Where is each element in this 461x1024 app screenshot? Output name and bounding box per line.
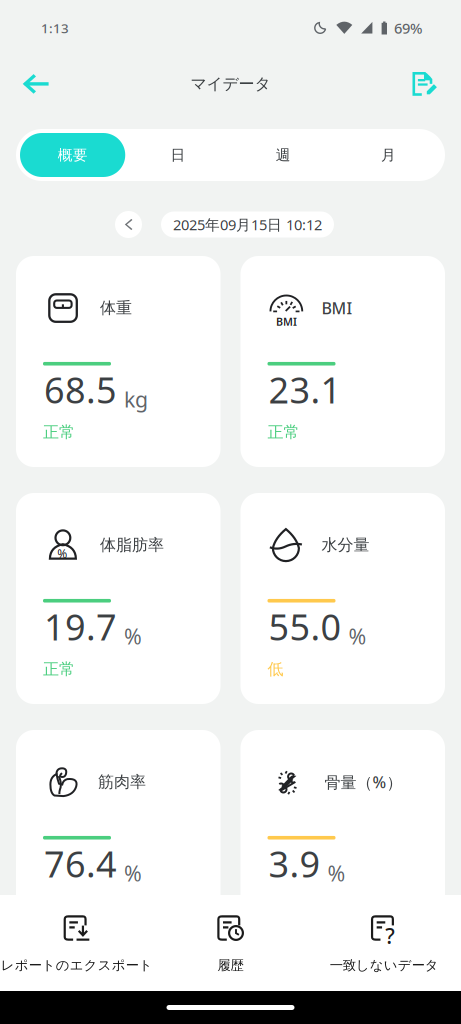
staticText: BMI bbox=[321, 297, 352, 319]
staticText: 3.9 bbox=[268, 839, 320, 887]
staticText: 19.7 bbox=[44, 602, 117, 650]
staticText: マイデータ bbox=[190, 74, 270, 94]
staticText: 1:13 bbox=[41, 19, 69, 37]
staticText: % bbox=[124, 622, 142, 650]
staticText: 骨量（%） bbox=[324, 771, 402, 793]
button[interactable]: BMI bbox=[240, 256, 445, 467]
staticText: 筋肉率 bbox=[98, 772, 146, 792]
button[interactable]: 水分量 bbox=[240, 493, 445, 704]
button[interactable]: 週 bbox=[230, 133, 336, 177]
staticText: 低 bbox=[267, 659, 283, 679]
button[interactable]: 体重 bbox=[16, 256, 220, 467]
staticText: % bbox=[57, 546, 67, 561]
button[interactable]: 骨量（%） bbox=[240, 730, 445, 941]
staticText: % bbox=[327, 859, 345, 887]
button[interactable]: 筋肉率 bbox=[16, 730, 220, 941]
staticText: 概要 bbox=[58, 146, 88, 164]
staticText: 2025年09月15日 10:12 bbox=[173, 215, 322, 234]
button[interactable]: 編集 bbox=[403, 62, 447, 106]
staticText: 69% bbox=[394, 18, 422, 38]
staticText: 正常 bbox=[43, 659, 75, 679]
staticText: 正常 bbox=[43, 896, 75, 916]
staticText: 55.0 bbox=[268, 602, 341, 650]
button[interactable]: % bbox=[16, 493, 220, 704]
staticText: 68.5 bbox=[44, 365, 117, 413]
staticText: 体脂肪率 bbox=[100, 535, 164, 555]
button[interactable]: 日 bbox=[125, 133, 230, 177]
staticText: BMI bbox=[276, 314, 297, 329]
button[interactable]: 戻る bbox=[14, 62, 58, 106]
button[interactable]: 概要 bbox=[20, 133, 125, 177]
staticText: 体重 bbox=[100, 298, 132, 318]
staticText: 履歴 bbox=[217, 957, 243, 973]
button[interactable]: レポートのエクスポート bbox=[0, 895, 154, 991]
staticText: % bbox=[124, 859, 142, 887]
button[interactable]: 履歴 bbox=[154, 895, 307, 991]
staticText: 正常 bbox=[267, 422, 299, 442]
button[interactable]: ? bbox=[307, 895, 461, 991]
staticText: 週 bbox=[276, 146, 291, 164]
staticText: 23.1 bbox=[268, 365, 341, 413]
staticText: 76.4 bbox=[44, 839, 117, 887]
staticText: 水分量 bbox=[321, 535, 369, 555]
staticText: 日 bbox=[170, 146, 185, 164]
staticText: 正常 bbox=[43, 422, 75, 442]
staticText: レポートのエクスポート bbox=[1, 957, 153, 973]
button[interactable]: 月 bbox=[336, 133, 441, 177]
staticText: 月 bbox=[381, 146, 396, 164]
staticText: 一致しないデータ bbox=[330, 957, 439, 973]
button[interactable]: 前の日 bbox=[115, 211, 142, 238]
staticText: % bbox=[348, 622, 366, 650]
staticText: ? bbox=[385, 921, 395, 950]
staticText: kg bbox=[124, 385, 148, 413]
